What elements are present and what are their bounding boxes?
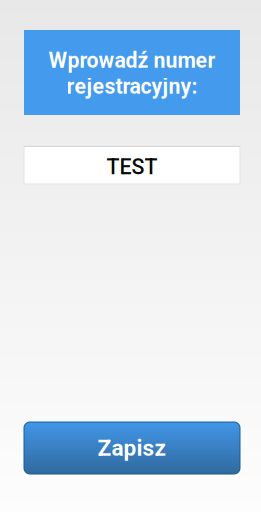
staticText: TEST xyxy=(106,154,157,179)
button[interactable]: Zapisz xyxy=(0,422,261,474)
staticText: Wprowadź numer xyxy=(48,48,215,73)
staticText: rejestracyjny: xyxy=(66,74,197,99)
staticText: Zapisz xyxy=(97,435,166,461)
